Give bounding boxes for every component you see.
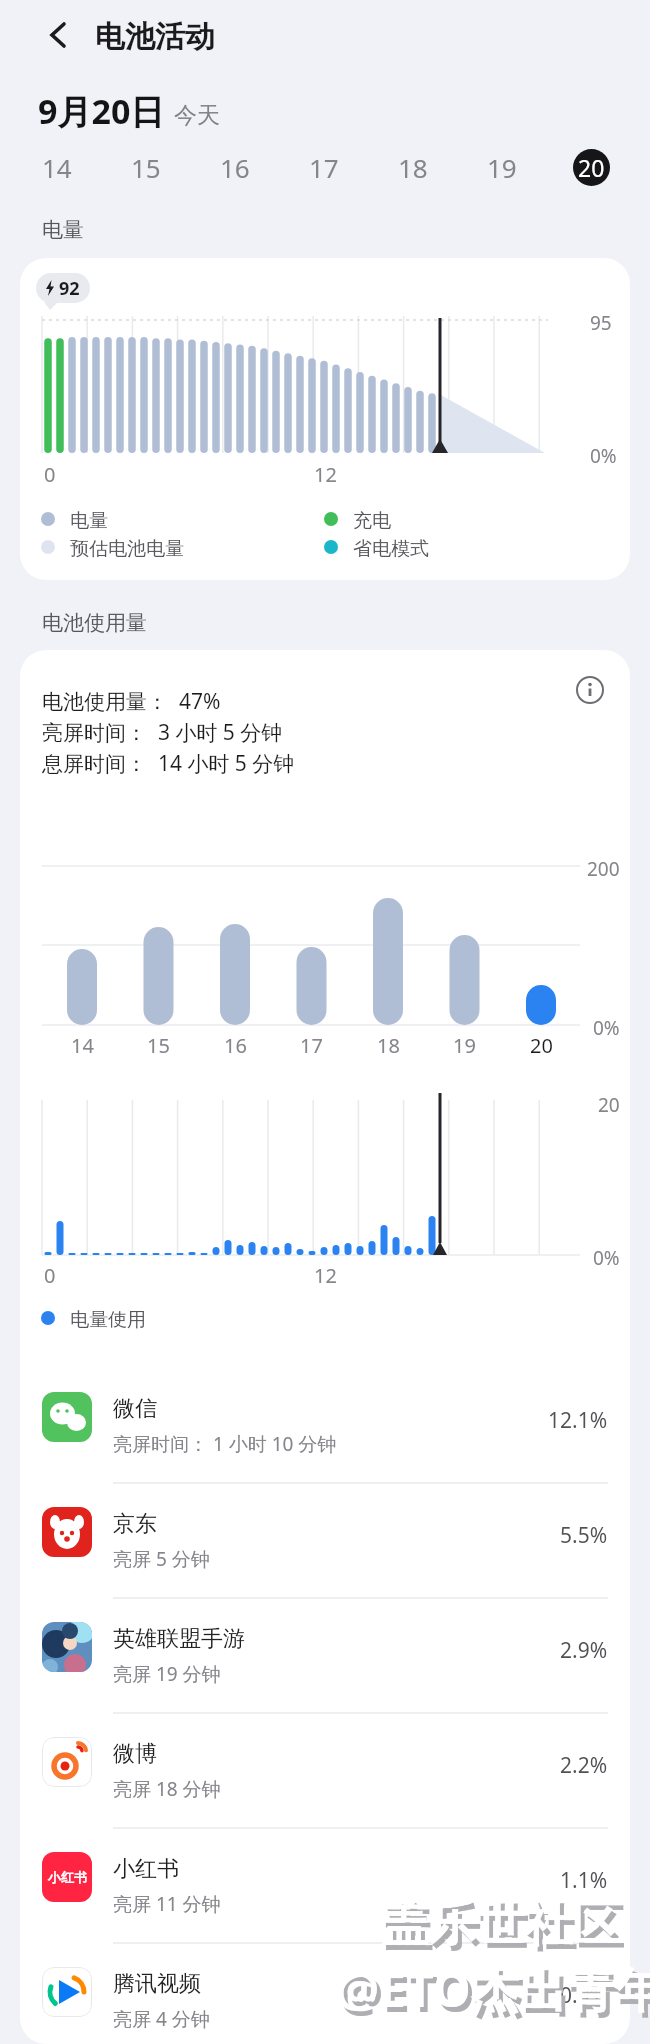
button[interactable]: [20, 1380, 630, 1495]
staticText: 18: [377, 1032, 400, 1059]
staticText: 19: [487, 150, 517, 185]
staticText: 腾讯视频: [113, 1970, 201, 1998]
staticText: 17: [300, 1032, 323, 1059]
staticText: 电量: [42, 217, 84, 243]
staticText: 0.9%: [560, 1981, 608, 2010]
staticText: 亮屏 18 分钟: [113, 1776, 221, 1802]
staticText: 12: [314, 461, 337, 488]
button[interactable]: [36, 12, 82, 58]
staticText: 亮屏 4 分钟: [113, 2006, 210, 2032]
staticText: 0%: [593, 1245, 620, 1271]
staticText: 息屏时间： 14 小时 5 分钟: [42, 749, 295, 778]
staticText: 0: [44, 1262, 56, 1289]
staticText: 15: [131, 150, 161, 185]
staticText: 0%: [590, 443, 617, 469]
staticText: 盖乐世社区: [384, 1899, 624, 1959]
staticText: 14: [42, 150, 72, 185]
staticText: 微信: [113, 1395, 157, 1423]
button[interactable]: 14: [31, 149, 83, 186]
staticText: 亮屏时间： 3 小时 5 分钟: [42, 718, 283, 747]
button[interactable]: 17: [298, 149, 350, 186]
staticText: 充电: [353, 509, 391, 533]
button[interactable]: [20, 1725, 630, 1840]
staticText: @ETO杰出青年: [336, 1956, 650, 2022]
button[interactable]: 18: [387, 149, 439, 186]
staticText: 亮屏 5 分钟: [113, 1546, 210, 1572]
staticText: @ETO杰出青年: [340, 1961, 650, 2027]
staticText: 小红书: [48, 1869, 87, 1885]
staticText: 19: [453, 1032, 476, 1059]
button[interactable]: [20, 1610, 630, 1725]
button[interactable]: [20, 1495, 630, 1610]
staticText: 电量: [70, 509, 108, 533]
staticText: 英雄联盟手游: [113, 1625, 245, 1653]
button[interactable]: [20, 1840, 630, 1955]
staticText: 18: [398, 150, 428, 185]
staticText: 微博: [113, 1740, 157, 1768]
staticText: 12.1%: [548, 1406, 608, 1435]
staticText: 亮屏 11 分钟: [113, 1891, 221, 1917]
button[interactable]: [20, 1955, 630, 2044]
staticText: 95: [590, 310, 612, 336]
staticText: 亮屏时间： 1 小时 10 分钟: [113, 1431, 337, 1457]
button[interactable]: 20: [573, 149, 610, 186]
staticText: 2.2%: [560, 1751, 608, 1780]
staticText: 亮屏 19 分钟: [113, 1661, 221, 1687]
staticText: 16: [220, 150, 250, 185]
staticText: 2.9%: [560, 1636, 608, 1665]
staticText: 15: [147, 1032, 170, 1059]
staticText: 电池使用量: [42, 610, 147, 636]
staticText: 电池使用量： 47%: [42, 687, 221, 716]
staticText: 京东: [113, 1510, 157, 1538]
staticText: 1.1%: [560, 1866, 608, 1895]
button[interactable]: 16: [209, 149, 261, 186]
staticText: 200: [587, 856, 620, 882]
staticText: 92: [59, 276, 80, 301]
button[interactable]: 19: [476, 149, 528, 186]
staticText: 省电模式: [353, 537, 429, 561]
staticText: 20: [598, 1092, 620, 1118]
button[interactable]: [576, 676, 604, 704]
staticText: 20: [530, 1032, 553, 1059]
staticText: 17: [309, 150, 339, 185]
staticText: 今天: [174, 101, 220, 130]
staticText: 预估电池电量: [70, 537, 184, 561]
staticText: 小红书: [113, 1855, 179, 1883]
staticText: 20: [578, 152, 605, 183]
button[interactable]: 15: [120, 149, 172, 186]
staticText: 9月20日: [38, 88, 165, 134]
staticText: 14: [71, 1032, 94, 1059]
staticText: 16: [224, 1032, 247, 1059]
staticText: 0%: [593, 1015, 620, 1041]
staticText: 电池活动: [95, 18, 215, 56]
staticText: 12: [314, 1262, 337, 1289]
staticText: 电量使用: [70, 1308, 146, 1332]
staticText: 0: [44, 461, 56, 488]
staticText: 5.5%: [560, 1521, 608, 1550]
staticText: 盖乐世社区: [380, 1894, 620, 1954]
